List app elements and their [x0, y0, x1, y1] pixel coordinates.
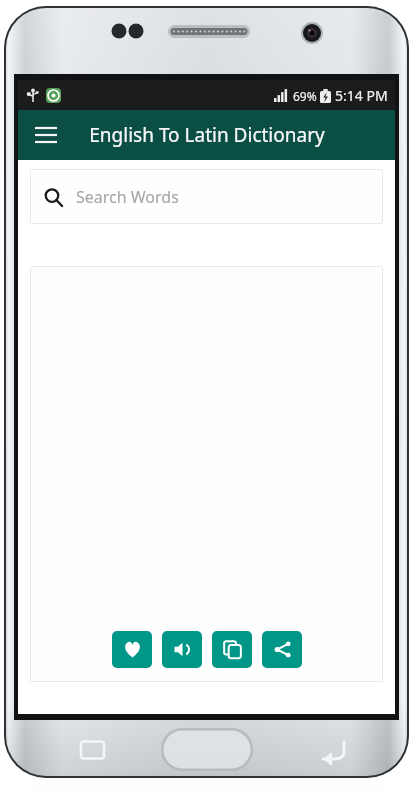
button[interactable]: Search Words	[30, 169, 383, 224]
button[interactable]: Play pronunciation	[162, 631, 202, 668]
staticText: English To Latin Dictionary	[89, 122, 325, 148]
staticText: Search Words	[76, 186, 179, 208]
button[interactable]: Add to favorites	[112, 631, 152, 668]
staticText: 69%	[293, 88, 317, 104]
button[interactable]: Open navigation menu	[26, 115, 66, 155]
button[interactable]: Copy text	[212, 631, 252, 668]
button[interactable]: Share	[262, 631, 302, 668]
staticText: 5:14 PM	[335, 86, 388, 105]
